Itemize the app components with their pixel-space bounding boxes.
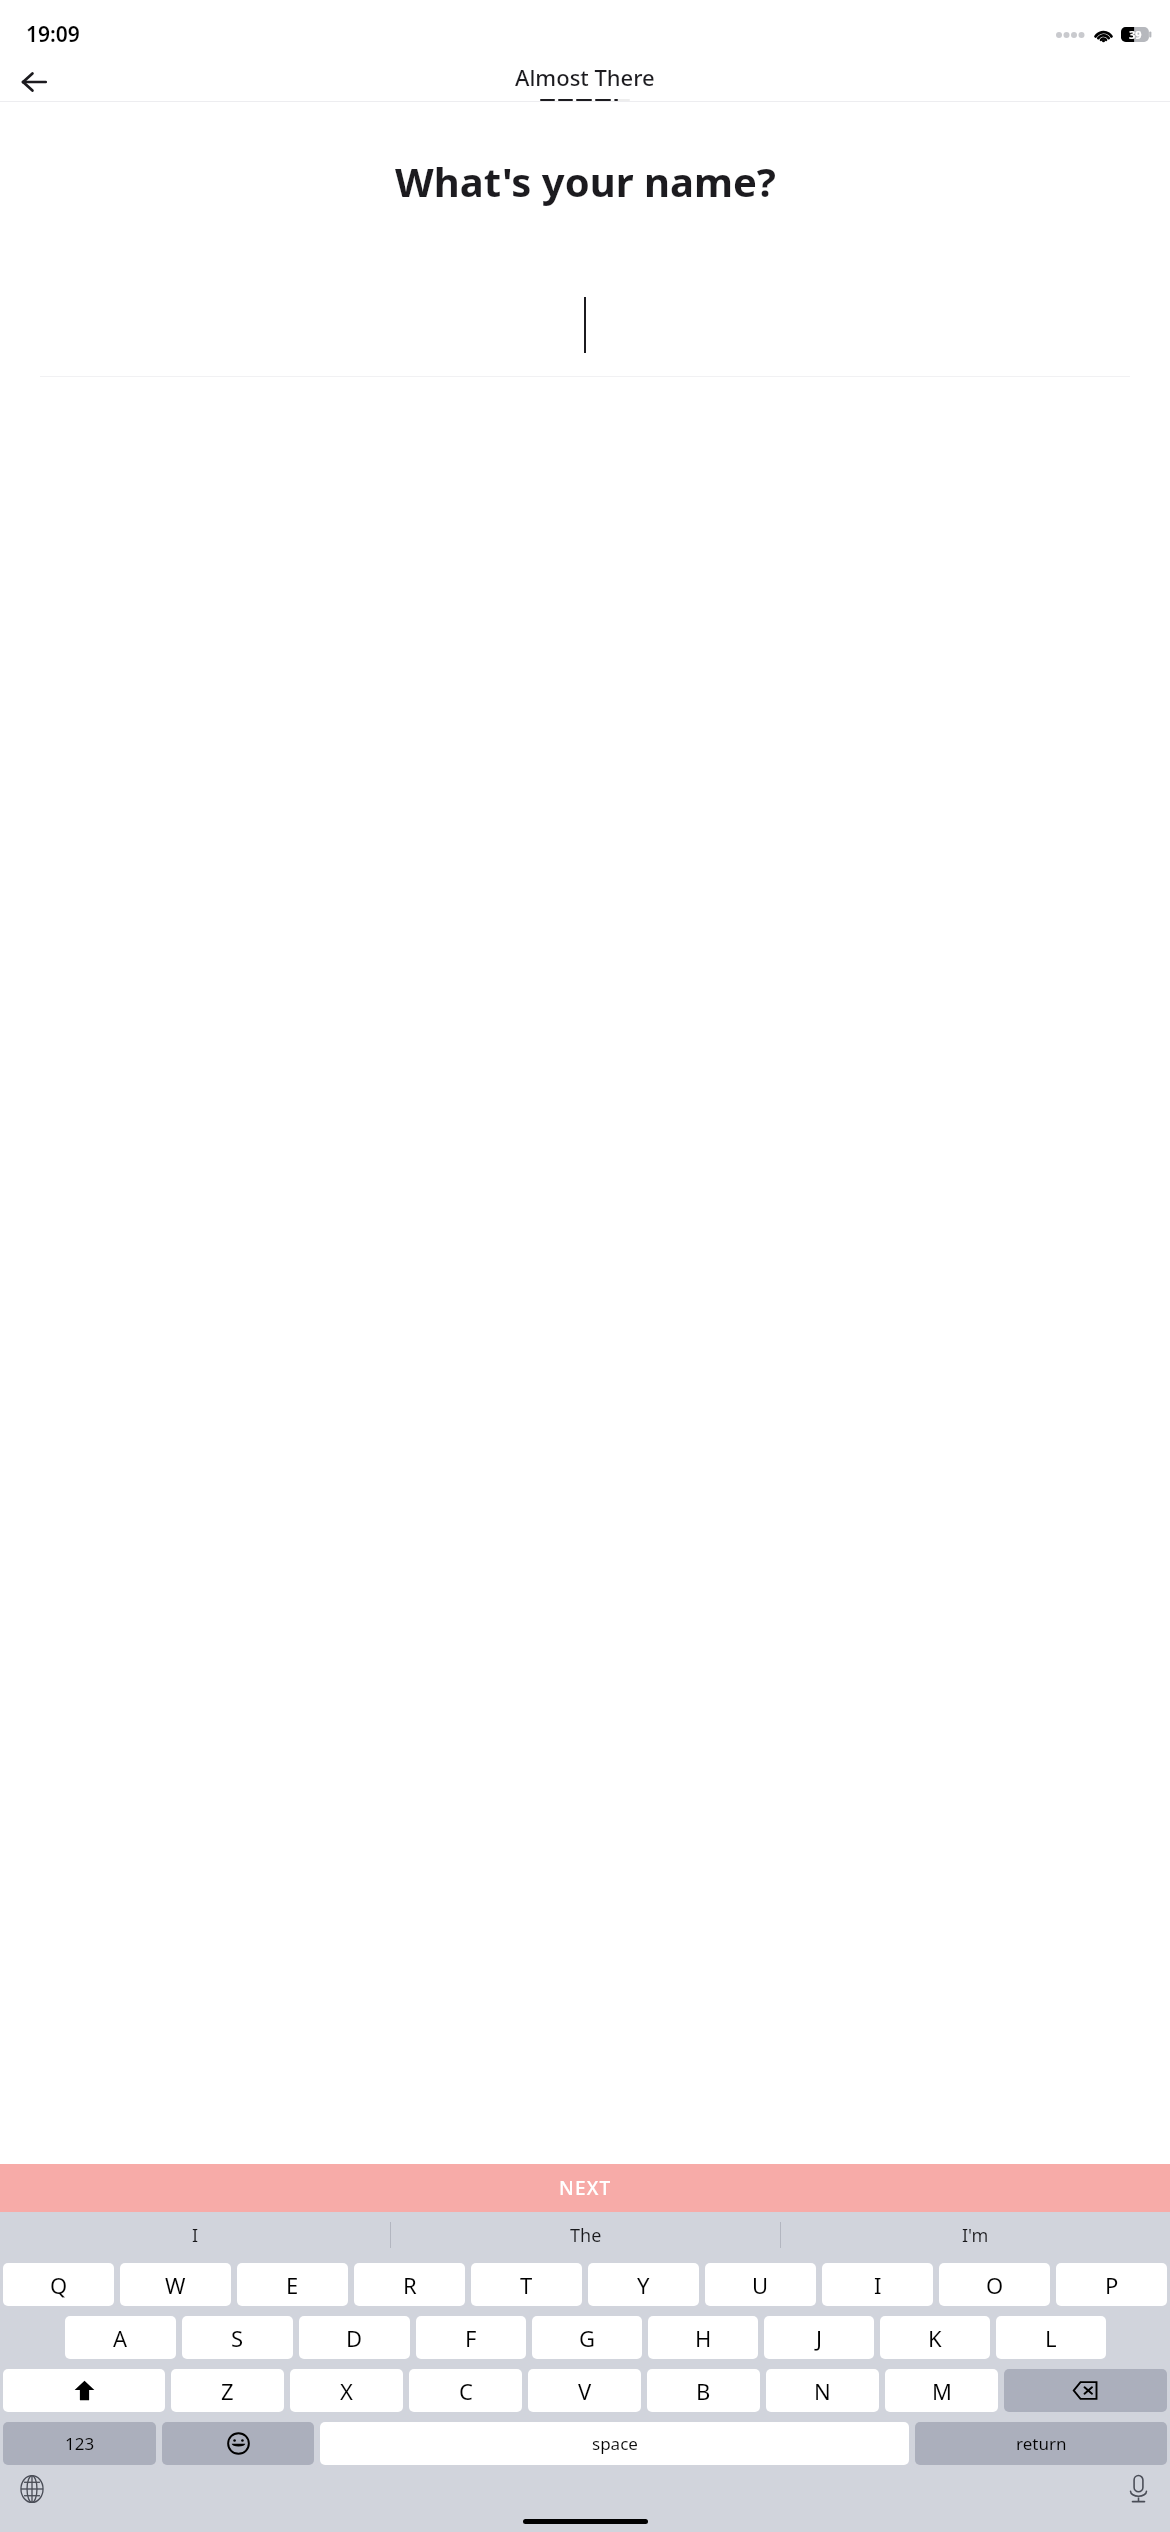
button[interactable]: B — [647, 2369, 760, 2412]
staticText: I — [874, 2270, 882, 2300]
button[interactable]: Shift — [3, 2369, 165, 2412]
button[interactable]: S — [182, 2316, 293, 2359]
staticText: space — [592, 2432, 638, 2455]
button[interactable]: Backspace — [1004, 2369, 1167, 2412]
button[interactable]: O — [939, 2263, 1050, 2306]
staticText: M — [932, 2376, 952, 2406]
staticText: K — [928, 2323, 942, 2353]
staticText: I — [192, 2223, 199, 2248]
button[interactable]: The — [391, 2212, 780, 2258]
button[interactable]: Emoji — [162, 2422, 314, 2465]
button[interactable]: I'm — [781, 2212, 1170, 2258]
button[interactable]: E — [237, 2263, 348, 2306]
staticText: What's your name? — [395, 154, 776, 208]
button[interactable] — [0, 297, 1170, 377]
staticText: V — [578, 2376, 592, 2406]
button[interactable]: T — [471, 2263, 582, 2306]
staticText: 123 — [65, 2432, 95, 2455]
staticText: L — [1045, 2323, 1057, 2353]
button[interactable]: NEXT — [0, 2164, 1170, 2212]
button[interactable]: Back — [10, 62, 58, 101]
staticText: A — [113, 2323, 128, 2353]
staticText: NEXT — [559, 2175, 612, 2201]
button[interactable]: U — [705, 2263, 816, 2306]
button[interactable]: P — [1056, 2263, 1167, 2306]
staticText: Almost There — [515, 62, 655, 92]
button[interactable]: J — [764, 2316, 874, 2359]
staticText: D — [346, 2323, 363, 2353]
button[interactable]: I — [0, 2212, 390, 2258]
staticText: R — [403, 2270, 417, 2300]
button[interactable]: Q — [3, 2263, 114, 2306]
button[interactable]: D — [299, 2316, 410, 2359]
button[interactable]: H — [648, 2316, 758, 2359]
staticText: X — [340, 2376, 353, 2406]
button[interactable]: R — [354, 2263, 465, 2306]
button[interactable]: I — [822, 2263, 933, 2306]
button[interactable]: return — [915, 2422, 1167, 2465]
staticText: J — [816, 2323, 823, 2353]
staticText: P — [1105, 2270, 1119, 2300]
button[interactable]: Switch keyboard language — [10, 2467, 54, 2511]
button[interactable]: Dictation — [1116, 2467, 1160, 2511]
staticText: The — [570, 2223, 602, 2248]
staticText: W — [165, 2270, 186, 2300]
button[interactable]: C — [409, 2369, 522, 2412]
staticText: T — [520, 2270, 533, 2300]
button[interactable]: V — [528, 2369, 641, 2412]
button[interactable]: Y — [588, 2263, 699, 2306]
button[interactable]: N — [766, 2369, 879, 2412]
button[interactable]: A — [65, 2316, 176, 2359]
button[interactable]: X — [290, 2369, 403, 2412]
button[interactable]: M — [885, 2369, 998, 2412]
button[interactable]: Z — [171, 2369, 284, 2412]
button[interactable]: K — [880, 2316, 990, 2359]
staticText: 19:09 — [26, 20, 80, 49]
staticText: G — [579, 2323, 596, 2353]
button[interactable]: L — [996, 2316, 1106, 2359]
staticText: Q — [50, 2270, 68, 2300]
button[interactable]: 123 — [3, 2422, 156, 2465]
button[interactable]: space — [320, 2422, 909, 2465]
staticText: F — [465, 2323, 477, 2353]
staticText: I'm — [962, 2223, 989, 2248]
button[interactable]: F — [416, 2316, 526, 2359]
staticText: U — [752, 2270, 769, 2300]
staticText: H — [695, 2323, 712, 2353]
button[interactable]: W — [120, 2263, 231, 2306]
staticText: S — [231, 2323, 244, 2353]
button[interactable]: G — [532, 2316, 642, 2359]
staticText: Z — [221, 2376, 234, 2406]
staticText: E — [286, 2270, 299, 2300]
staticText: B — [696, 2376, 711, 2406]
staticText: N — [814, 2376, 831, 2406]
staticText: return — [1016, 2432, 1067, 2455]
staticText: Y — [637, 2270, 650, 2300]
staticText: O — [986, 2270, 1004, 2300]
staticText: C — [459, 2376, 473, 2406]
staticText: 39 — [1129, 27, 1142, 42]
